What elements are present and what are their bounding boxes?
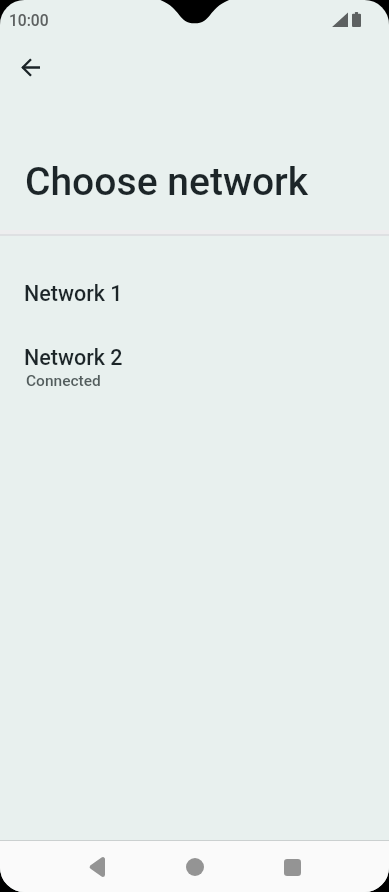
button[interactable]: Navigate up [7, 43, 55, 91]
button[interactable]: Network 1 [0, 268, 389, 320]
staticText: Network 1 [24, 281, 123, 306]
staticText: Choose network [25, 159, 309, 205]
button[interactable]: Back [73, 843, 121, 891]
button[interactable]: Home [171, 843, 219, 891]
button[interactable]: Network 2 [0, 332, 389, 400]
button[interactable]: Recent apps [268, 843, 316, 891]
staticText: Network 2 [24, 345, 123, 370]
staticText: Connected [26, 372, 101, 390]
staticText: 10:00 [9, 12, 49, 30]
